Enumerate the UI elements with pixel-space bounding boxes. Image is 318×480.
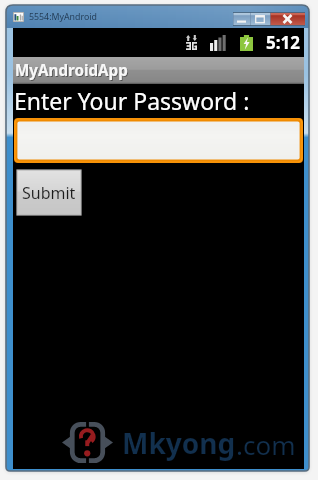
staticText: 5554:MyAndroid (29, 11, 97, 23)
staticText: 5:12 (266, 31, 300, 54)
staticText: MyAndroidApp (15, 60, 128, 81)
button[interactable]: Submit (17, 170, 81, 215)
staticText: Enter Your Password : (14, 85, 250, 116)
staticText: Submit (22, 182, 76, 204)
button[interactable]: Minimize (233, 7, 250, 26)
button[interactable]: Maximize (250, 7, 270, 26)
staticText: .com (236, 427, 296, 462)
button[interactable]: Password field (14, 118, 303, 163)
staticText: Mkyong (122, 424, 236, 462)
staticText: MyAndroidApp (16, 61, 129, 82)
button[interactable]: Close (270, 7, 305, 26)
